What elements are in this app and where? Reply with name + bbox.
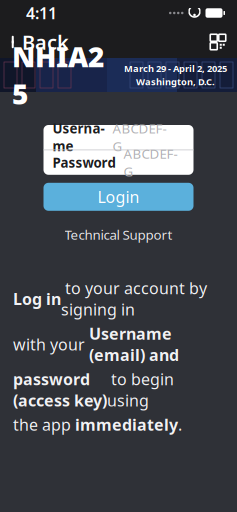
staticText: password (access key) — [13, 368, 107, 411]
staticText: ABCDEFG — [112, 119, 166, 155]
button[interactable]: Back — [0, 26, 77, 58]
staticText: the app — [13, 414, 75, 435]
staticText: to your account by signing in — [61, 277, 207, 320]
staticText: Washington, D.C. — [136, 75, 215, 88]
staticText: with your — [13, 334, 89, 355]
button[interactable]: Scan QR code — [210, 26, 237, 58]
staticText: Password — [52, 154, 115, 171]
staticText: March 29 - April 2, 2025 — [124, 62, 227, 74]
staticText: immediately — [75, 414, 178, 435]
staticText: to begin using — [107, 368, 174, 411]
button[interactable]: Technical Support — [58, 224, 178, 245]
staticText: Username (email) and — [89, 323, 179, 365]
staticText: NHIA25 — [12, 38, 104, 112]
staticText: Login — [97, 186, 139, 207]
staticText: Log in — [13, 288, 61, 309]
staticText: Back — [22, 29, 69, 55]
staticText: ABCDEFG — [123, 145, 177, 180]
button[interactable]: Login — [43, 183, 193, 211]
staticText: . — [178, 414, 182, 435]
staticText: 4:11 — [26, 2, 57, 24]
staticText: Username — [52, 119, 104, 155]
staticText: Technical Support — [64, 226, 172, 243]
